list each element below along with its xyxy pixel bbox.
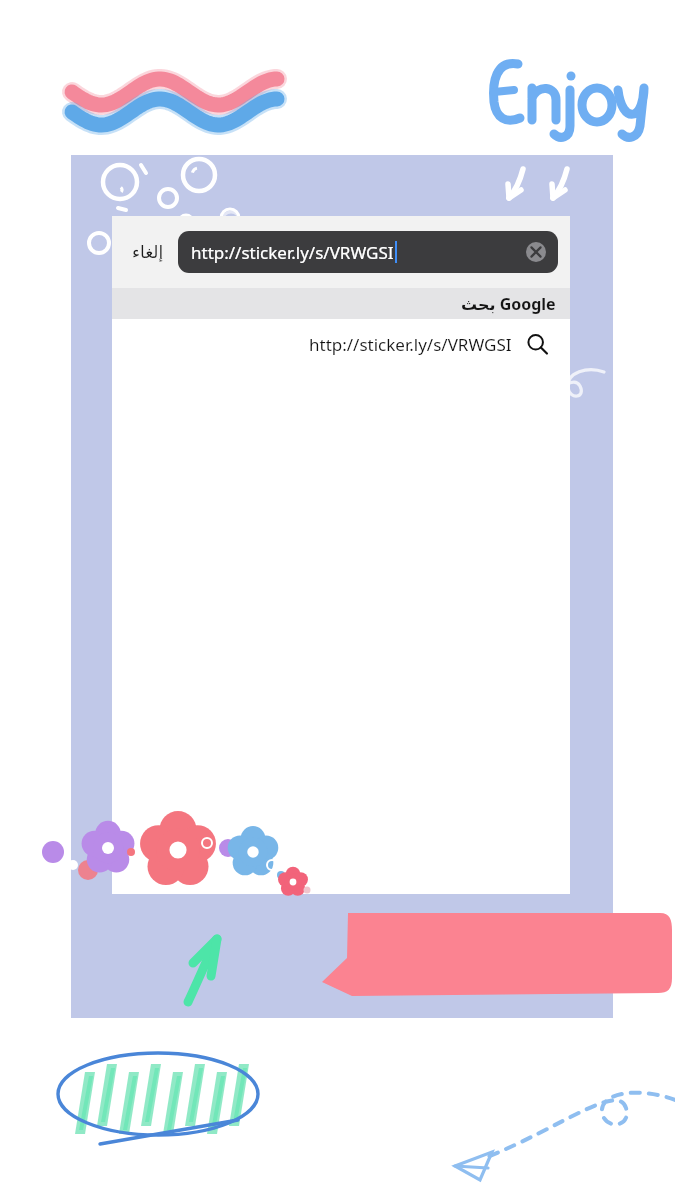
staticText: http://sticker.ly/s/VRWGSI (191, 241, 394, 264)
button[interactable]: http://sticker.ly/s/VRWGSI (178, 231, 558, 273)
staticText: إلغاء (132, 242, 164, 262)
staticText: http://sticker.ly/s/VRWGSI (309, 333, 512, 356)
button[interactable]: إلغاء (126, 236, 170, 268)
staticText: بحث Google (461, 293, 556, 315)
button[interactable]: Clear text (526, 242, 546, 262)
button[interactable]: http://sticker.ly/s/VRWGSI (112, 319, 570, 369)
other: Search (526, 333, 548, 355)
